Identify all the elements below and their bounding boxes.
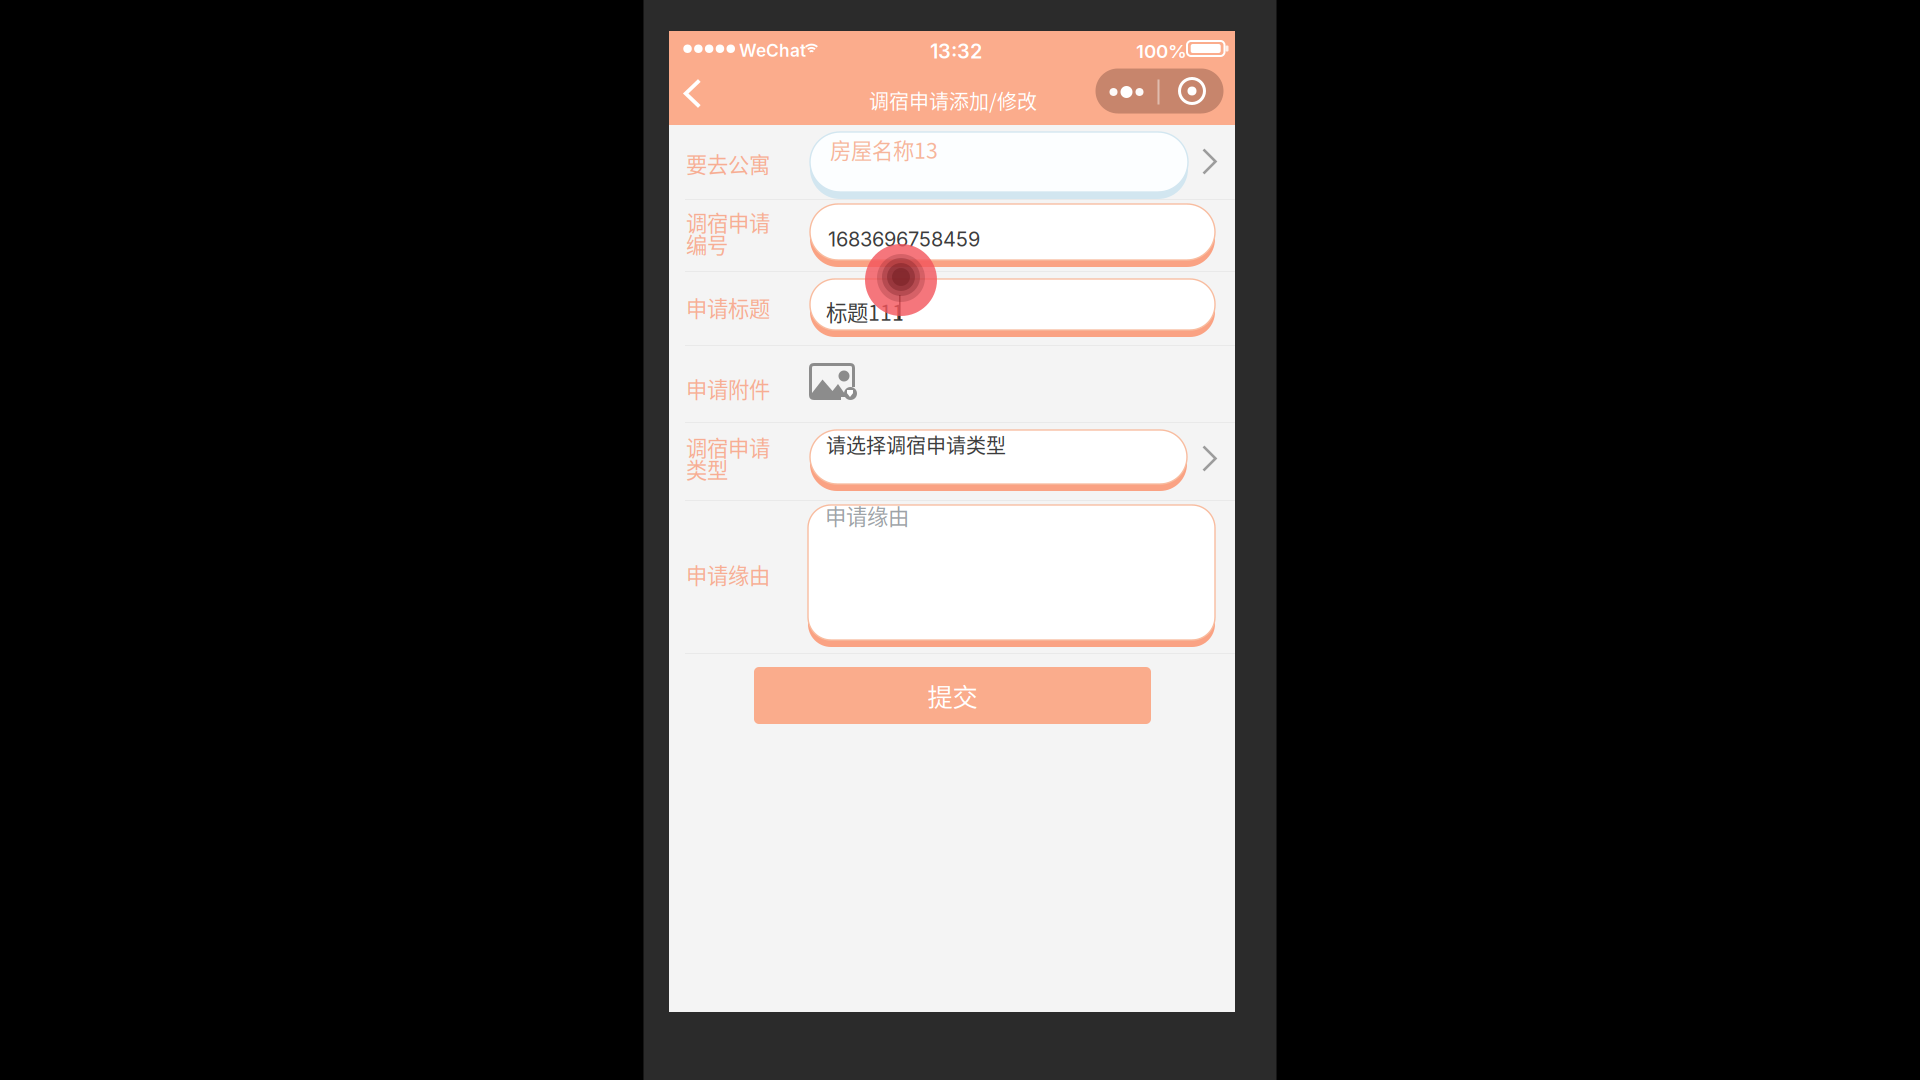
staticText: 请选择调宿申请类型	[826, 430, 1006, 459]
staticText: 100%	[1136, 40, 1187, 63]
button[interactable]: Add attachment	[809, 363, 869, 417]
staticText: 要去公寓	[686, 148, 770, 179]
button[interactable]: More options	[1095, 68, 1157, 113]
staticText: 申请附件	[686, 373, 770, 404]
staticText: 13:32	[930, 39, 982, 63]
staticText: 房屋名称13	[830, 134, 938, 165]
staticText: 申请缘由	[686, 559, 770, 590]
staticText: 提交	[927, 677, 977, 714]
button[interactable]: 提交	[754, 667, 1151, 724]
staticText: 标题111	[826, 296, 904, 327]
staticText: 调宿申请	[686, 431, 770, 462]
staticText: 调宿申请	[686, 206, 770, 237]
button[interactable]: 调宿申请	[669, 423, 1235, 500]
button[interactable]: Close mini program	[1159, 68, 1223, 113]
staticText: 类型	[686, 453, 728, 484]
staticText: 申请标题	[686, 292, 770, 323]
staticText: 调宿申请添加/修改	[869, 86, 1037, 115]
button[interactable]: Back	[668, 69, 716, 117]
button[interactable]: 要去公寓	[669, 125, 1235, 199]
staticText: 申请缘由	[825, 500, 909, 531]
staticText: WeChat	[739, 40, 806, 61]
staticText: 编号	[686, 228, 728, 259]
staticText: 1683696758459	[828, 227, 980, 251]
